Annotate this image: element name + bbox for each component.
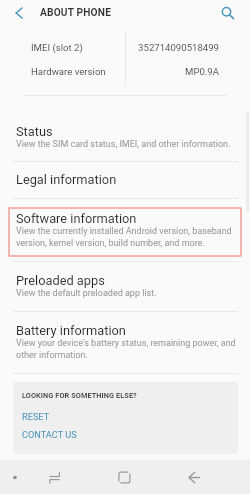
- staticText: Battery information: [16, 323, 126, 338]
- button[interactable]: Recent apps: [38, 460, 72, 494]
- button[interactable]: CONTACT US: [22, 429, 77, 440]
- staticText: 352714090518499: [125, 42, 219, 53]
- button[interactable]: Back: [176, 460, 210, 494]
- staticText: Hardware version: [31, 66, 125, 77]
- button[interactable]: Software information: [0, 199, 250, 262]
- staticText: MP0.9A: [125, 66, 219, 77]
- staticText: Preloaded apps: [16, 273, 105, 288]
- staticText: ABOUT PHONE: [40, 7, 112, 19]
- staticText: Status: [16, 124, 53, 139]
- staticText: IMEI (slot 2): [31, 42, 125, 53]
- staticText: LOOKING FOR SOMETHING ELSE?: [22, 391, 137, 400]
- button[interactable]: Show navigation bar: [3, 460, 27, 494]
- staticText: View your device's battery status, remai…: [16, 338, 242, 360]
- button[interactable]: Battery information: [0, 312, 250, 374]
- button[interactable]: Navigate up: [0, 0, 32, 30]
- staticText: View the currently installed Android ver…: [16, 226, 242, 248]
- button[interactable]: Preloaded apps: [0, 262, 250, 312]
- staticText: View the SIM card status, IMEI, and othe…: [16, 139, 231, 150]
- button[interactable]: Status: [0, 110, 250, 162]
- staticText: Legal information: [16, 172, 117, 187]
- staticText: Software information: [16, 211, 137, 226]
- staticText: View the default preloaded app list.: [16, 288, 157, 299]
- button[interactable]: Search: [212, 0, 244, 30]
- button[interactable]: Legal information: [0, 162, 250, 199]
- button[interactable]: RESET: [22, 411, 50, 422]
- button[interactable]: Home: [107, 460, 141, 494]
